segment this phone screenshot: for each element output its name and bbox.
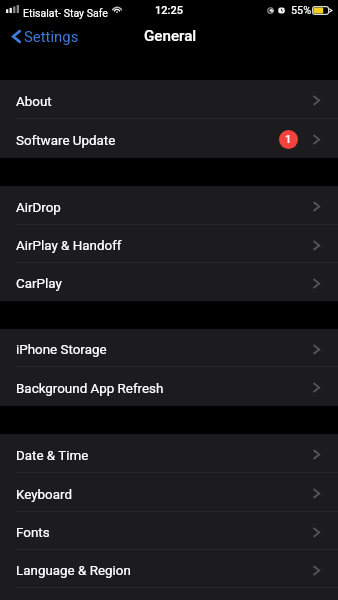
staticText: Settings (24, 28, 79, 45)
other: Open (313, 382, 320, 393)
button[interactable]: AirDrop (0, 186, 338, 225)
staticText: About (16, 94, 52, 110)
other: Open (313, 565, 320, 576)
staticText: Date & Time (16, 448, 89, 464)
staticText: Language & Region (16, 563, 131, 579)
button[interactable]: iPhone Storage (0, 329, 338, 367)
staticText: 55% (291, 4, 312, 17)
other: Open (313, 201, 320, 212)
button[interactable]: About (0, 80, 338, 119)
other: Open (313, 278, 320, 289)
other: Battery 55 percent, low power mode (312, 6, 332, 15)
staticText: Etisalat- Stay Safe (23, 7, 108, 19)
button[interactable]: Fonts (0, 512, 338, 550)
button[interactable]: Date & Time (0, 434, 338, 473)
button[interactable]: Software Update (0, 119, 338, 158)
other: Back to Settings (12, 29, 21, 44)
other: Open (313, 488, 320, 499)
staticText: Keyboard (16, 487, 72, 503)
other: Open (313, 527, 320, 538)
staticText: Background App Refresh (16, 381, 164, 397)
staticText: Fonts (16, 525, 50, 541)
other: Location services (267, 7, 274, 14)
staticText: General (144, 27, 197, 45)
button[interactable]: AirPlay & Handoff (0, 225, 338, 263)
staticText: AirPlay & Handoff (16, 238, 122, 254)
staticText: CarPlay (16, 276, 62, 292)
button[interactable]: Background App Refresh (0, 367, 338, 406)
button[interactable]: Back to Settings (0, 24, 87, 49)
staticText: 1 (285, 133, 292, 146)
button[interactable]: Language & Region (0, 550, 338, 588)
other: Open (313, 240, 320, 251)
staticText: AirDrop (16, 200, 61, 216)
other: Alarm (278, 7, 285, 14)
button[interactable]: CarPlay (0, 263, 338, 301)
other: Open (313, 344, 320, 355)
staticText: Software Update (16, 133, 116, 149)
other: Open (313, 134, 320, 145)
button[interactable]: Keyboard (0, 473, 338, 512)
staticText: 12:25 (155, 4, 183, 17)
staticText: iPhone Storage (16, 342, 107, 358)
other: Open (313, 95, 320, 106)
other: Open (313, 449, 320, 460)
